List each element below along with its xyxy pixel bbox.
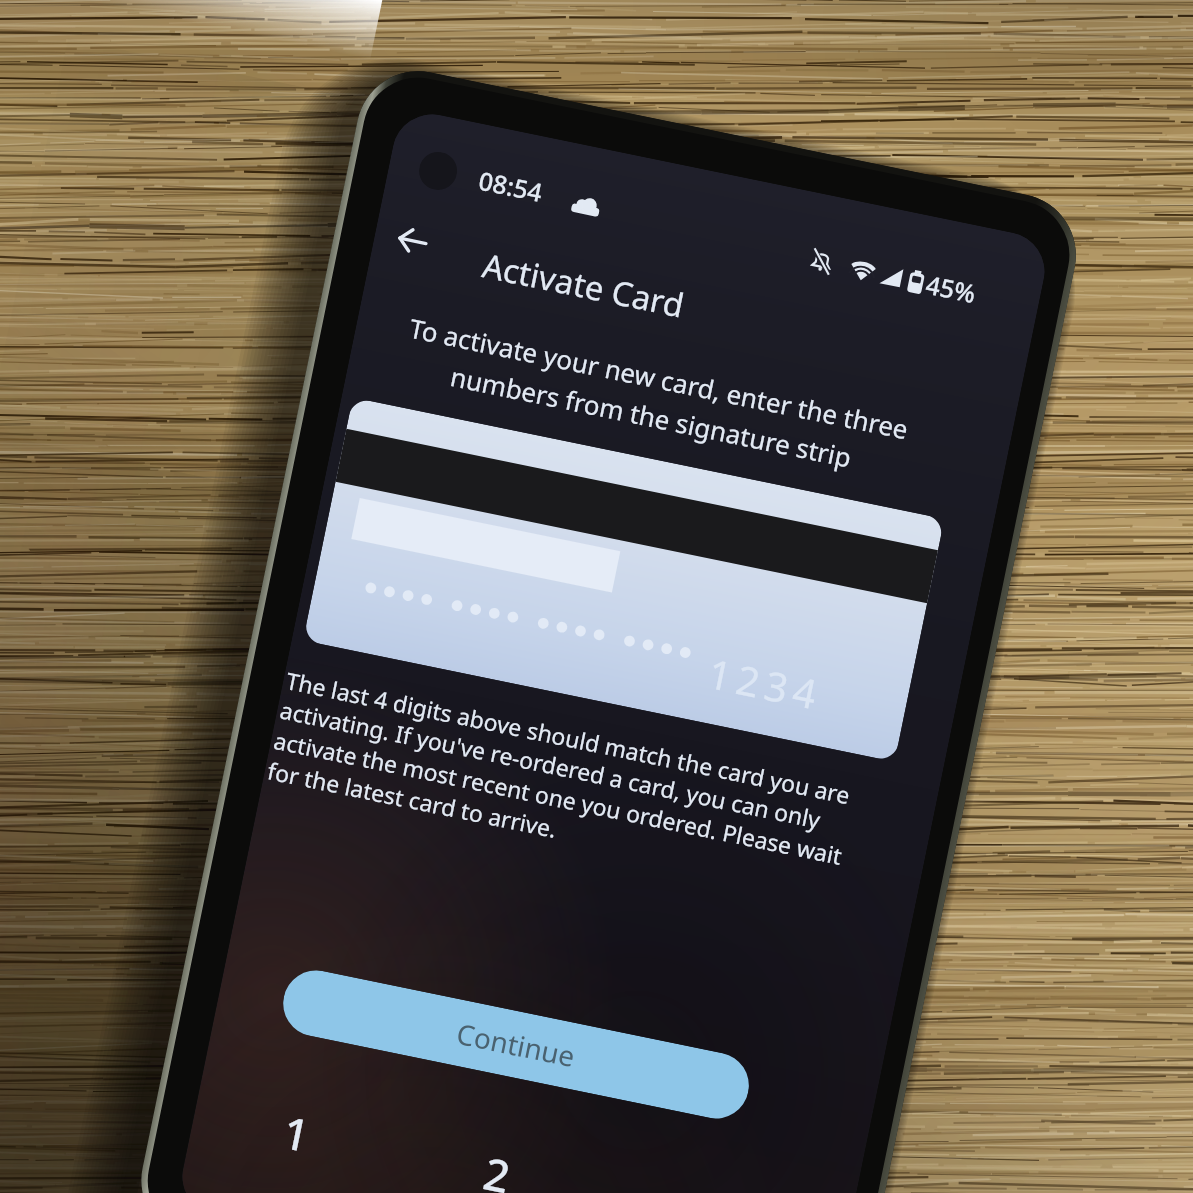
staticText: 1	[278, 1101, 315, 1165]
button[interactable]: Continue	[277, 964, 755, 1124]
staticText: To activate your new card, enter the thr…	[357, 301, 952, 494]
staticText: 08:54	[476, 163, 546, 209]
button[interactable]: Back	[379, 207, 445, 273]
button[interactable]: 2	[395, 1110, 600, 1193]
staticText: Activate Card	[479, 242, 689, 328]
staticText: 45%	[923, 267, 979, 310]
staticText: 1234	[703, 645, 828, 721]
button[interactable]: 1	[194, 1069, 399, 1193]
staticText: Continue	[453, 1014, 579, 1075]
staticText: 2	[479, 1142, 516, 1193]
staticText: The last 4 digits above should match the…	[265, 664, 887, 908]
